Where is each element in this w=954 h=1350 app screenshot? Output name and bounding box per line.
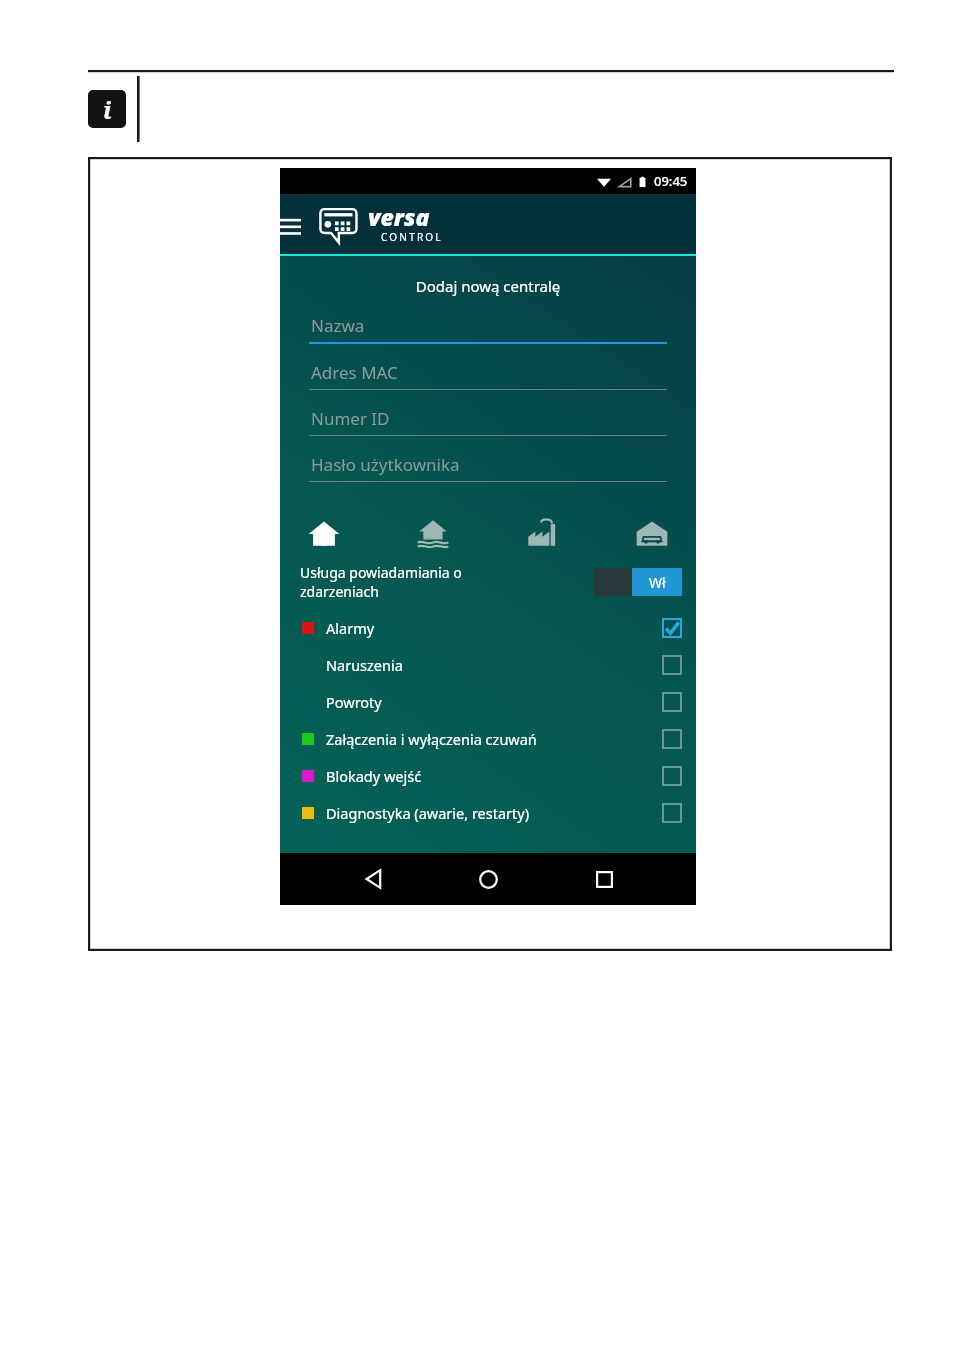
button[interactable]: Nazwa xyxy=(309,314,667,361)
button[interactable]: Menu xyxy=(272,207,308,243)
staticText: versa xyxy=(368,201,430,232)
staticText: Nazwa xyxy=(311,314,365,337)
staticText: Blokady wejść xyxy=(326,766,662,786)
button[interactable]: Alarmy xyxy=(300,609,682,646)
staticText: Diagnostyka (awarie, restarty) xyxy=(326,803,662,823)
button[interactable]: Adres MAC xyxy=(309,361,667,407)
staticText: Numer ID xyxy=(311,407,390,430)
button[interactable]: Dom xyxy=(302,511,346,555)
button[interactable]: Usługa powiadamiania włączona xyxy=(594,568,682,596)
staticText: Załączenia i wyłączenia czuwań xyxy=(326,729,662,749)
staticText: Naruszenia xyxy=(326,655,662,675)
button[interactable]: Diagnostyka (awarie, restarty) xyxy=(300,794,682,831)
button[interactable]: Naruszenia xyxy=(300,646,682,683)
button[interactable]: Załączenia i wyłączenia czuwań xyxy=(300,720,682,757)
staticText: Alarmy xyxy=(326,618,662,638)
button[interactable]: Garaż xyxy=(630,511,674,555)
button[interactable]: Numer ID xyxy=(309,407,667,453)
staticText: CONTROL xyxy=(381,230,443,244)
button[interactable]: Home xyxy=(465,856,511,902)
button[interactable]: Recent apps xyxy=(581,856,627,902)
staticText: Hasło użytkownika xyxy=(311,453,460,476)
staticText: Adres MAC xyxy=(311,361,398,384)
staticText: i xyxy=(103,93,112,126)
staticText: 09:45 xyxy=(654,172,688,190)
staticText: Dodaj nową centralę xyxy=(280,276,696,296)
button[interactable]: Hasło użytkownika xyxy=(309,453,667,499)
staticText: Usługa powiadamiania o zdarzeniach xyxy=(300,563,594,601)
button[interactable]: Back xyxy=(350,856,396,902)
button[interactable]: Powroty xyxy=(300,683,682,720)
staticText: Powroty xyxy=(326,692,662,712)
button[interactable]: Firma xyxy=(521,511,565,555)
staticText: Wł xyxy=(649,573,666,592)
button[interactable]: Blokady wejść xyxy=(300,757,682,794)
button[interactable]: Dom nad wodą xyxy=(411,511,455,555)
